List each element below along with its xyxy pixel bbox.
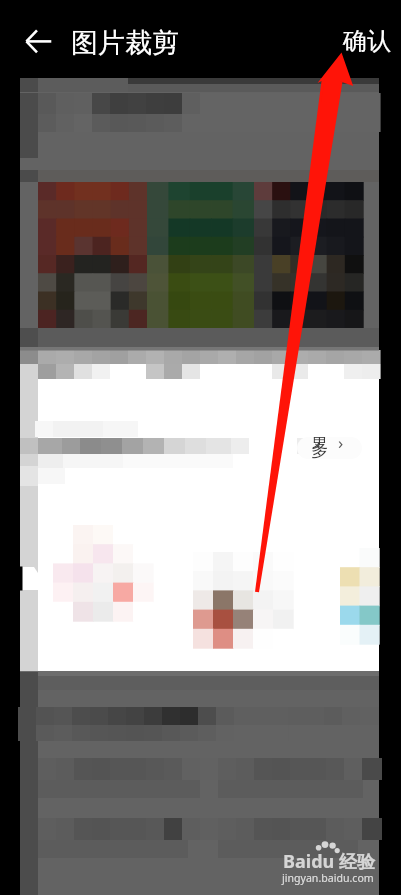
staticText: Baidu 经验 — [283, 849, 375, 874]
staticText: 更 — [311, 437, 328, 452]
staticText: › — [338, 437, 344, 453]
staticText: 图片裁剪 — [71, 26, 179, 60]
staticText: 多 — [311, 440, 328, 459]
button[interactable]: 确认 — [333, 19, 401, 65]
button[interactable]: 更 — [297, 437, 362, 459]
button[interactable]: 返回 — [17, 20, 60, 63]
staticText: 确认 — [343, 26, 391, 56]
staticText: jingyan.baidu.com — [282, 871, 374, 885]
